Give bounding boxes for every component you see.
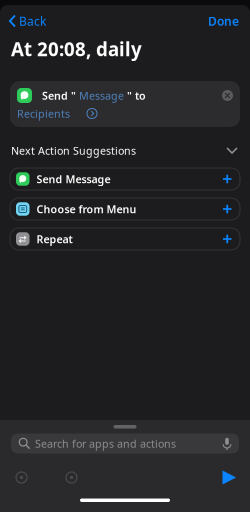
button[interactable]: Settings [60,466,83,489]
button[interactable]: Repeat [10,228,240,250]
staticText: Message [76,88,124,103]
staticText: Next Action Suggestions [11,143,136,158]
button[interactable]: Send Message [10,168,240,190]
staticText: Done [208,13,239,29]
staticText: Send Message [36,172,110,186]
staticText: At 20:08, daily [11,37,142,61]
staticText: Send [42,88,68,103]
staticText: " [68,88,76,103]
button[interactable]: Back [0,5,54,37]
button[interactable]: Send [0,81,250,127]
staticText: Choose from Menu [36,202,136,216]
button[interactable]: Collapse suggestions [222,143,242,158]
button[interactable]: Search for apps and actions [0,433,250,453]
staticText: Recipients [17,106,70,121]
staticText: Back [19,13,46,29]
button[interactable]: Done [197,5,250,37]
button[interactable]: Variables [10,466,33,489]
staticText: " to [124,88,146,103]
staticText: Repeat [36,232,72,246]
button[interactable]: Choose from Menu [10,198,240,220]
staticText: Search for apps and actions [35,436,176,451]
button[interactable]: Run [216,464,242,490]
